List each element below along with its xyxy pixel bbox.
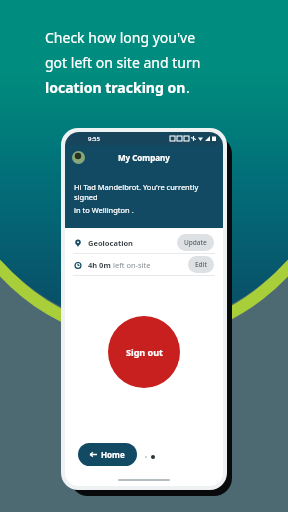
- staticText: 9:55: [88, 135, 100, 143]
- staticText: Hi Tad Mandelbrot. You're currently sign…: [74, 182, 214, 202]
- button[interactable]: Edit: [188, 256, 214, 273]
- staticText: left on-site: [113, 260, 151, 270]
- button[interactable]: Home: [78, 443, 137, 466]
- staticText: My Company: [118, 152, 170, 163]
- staticText: in to Wellington .: [74, 205, 134, 215]
- staticText: Geolocation: [88, 238, 133, 248]
- staticText: 4h 0m: [88, 260, 113, 270]
- staticText: got left on site and turn: [45, 53, 201, 72]
- staticText: .: [186, 78, 190, 97]
- staticText: location tracking on: [45, 78, 186, 97]
- button[interactable]: Update: [177, 234, 214, 251]
- button[interactable]: Sign out: [108, 316, 180, 388]
- button[interactable]: Profile: [72, 151, 85, 164]
- staticText: Edit: [195, 260, 207, 269]
- staticText: Check how long you've: [45, 28, 196, 47]
- staticText: Sign out: [126, 346, 163, 358]
- staticText: Update: [184, 238, 207, 247]
- staticText: Home: [101, 449, 125, 460]
- button[interactable]: Geolocation: [65, 232, 223, 253]
- button[interactable]: 4h 0m: [65, 254, 223, 275]
